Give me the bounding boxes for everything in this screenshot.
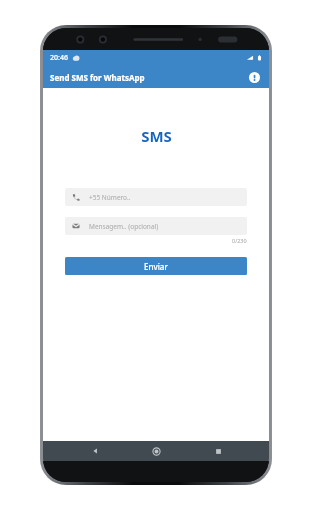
button[interactable]: Back xyxy=(85,441,105,461)
staticText: Enviar xyxy=(144,261,168,272)
staticText: 0/230 xyxy=(232,237,247,244)
button[interactable]: Recent apps xyxy=(208,441,228,461)
staticText: SMS xyxy=(141,126,172,146)
staticText: +55 Número.. xyxy=(89,193,131,202)
button[interactable]: +55 Número.. xyxy=(65,188,247,206)
button[interactable]: Mensagem.. (opcional) xyxy=(65,217,247,235)
staticText: 20:46 xyxy=(50,53,68,63)
button[interactable]: Information xyxy=(246,69,262,85)
button[interactable]: Enviar xyxy=(65,257,247,275)
button[interactable]: Home xyxy=(146,441,166,461)
staticText: Mensagem.. (opcional) xyxy=(89,222,159,231)
staticText: Send SMS for WhatsApp xyxy=(50,72,145,83)
